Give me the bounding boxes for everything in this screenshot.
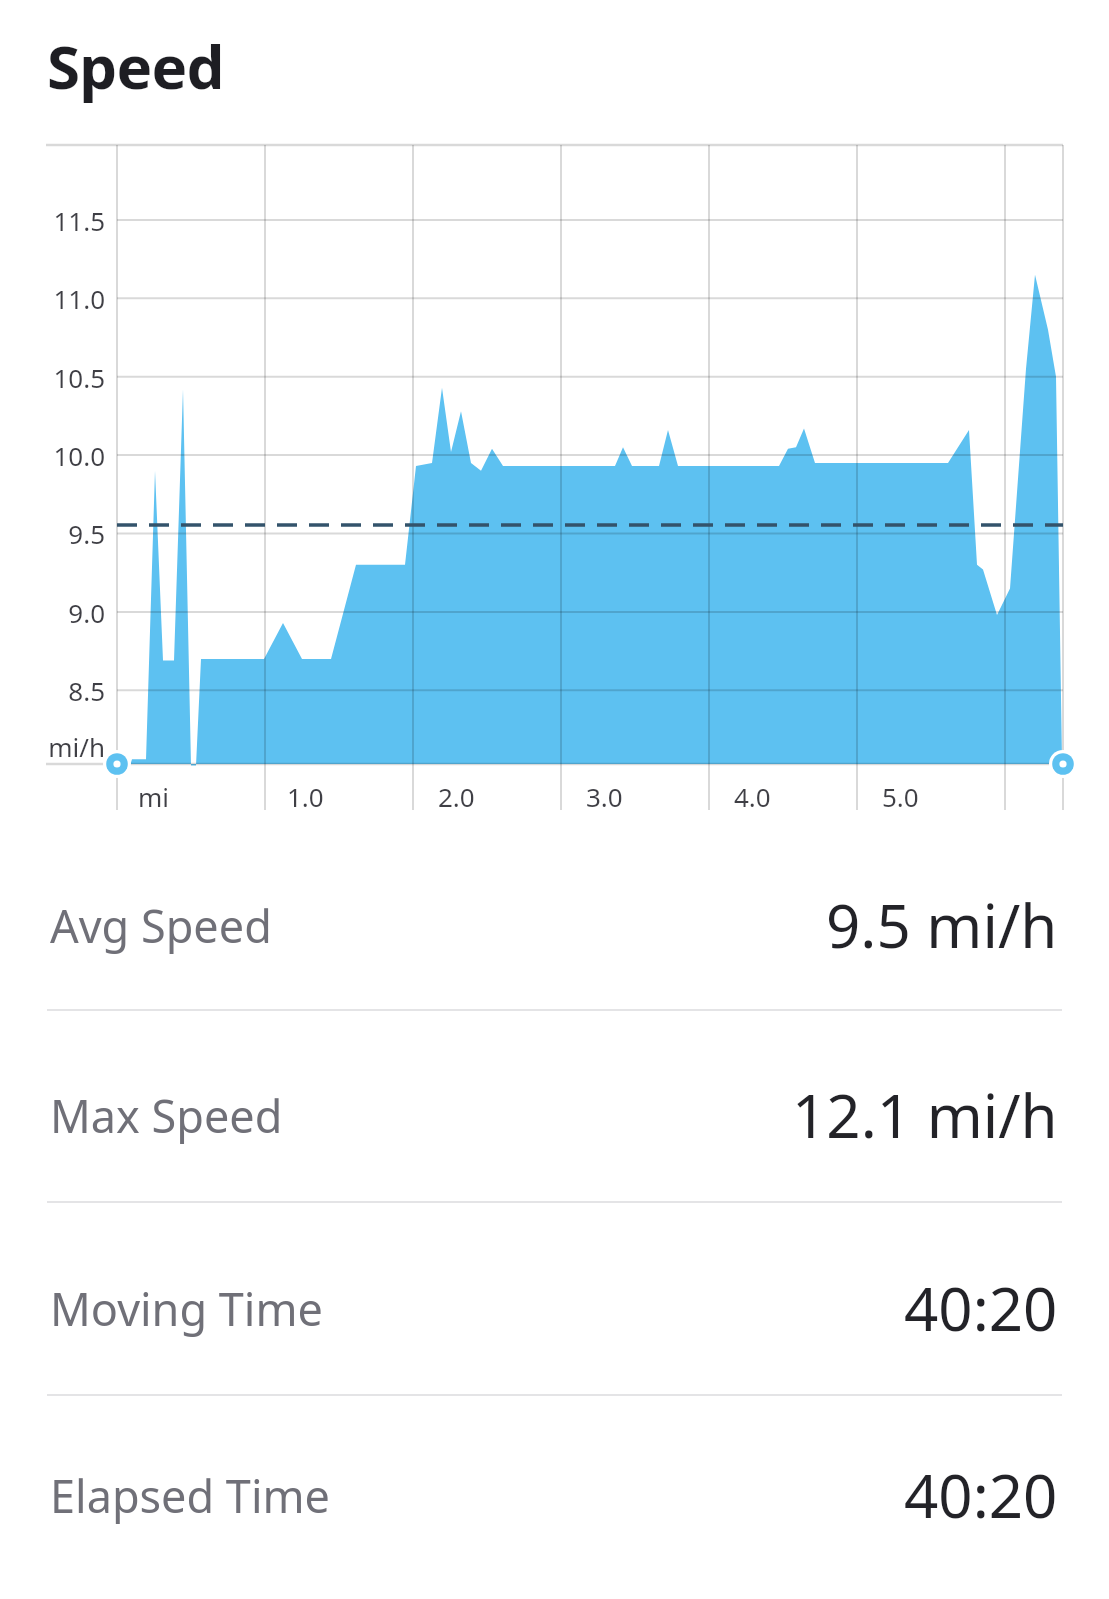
staticText: Elapsed Time <box>50 1465 330 1526</box>
staticText: Avg Speed <box>50 895 272 956</box>
staticText: Max Speed <box>50 1085 283 1146</box>
staticText: 40:20 <box>904 1454 1058 1536</box>
staticText: 4.0 <box>734 779 771 814</box>
button[interactable]: Avg Speed <box>0 830 1109 1020</box>
staticText: Moving Time <box>50 1278 323 1339</box>
staticText: 12.1 mi/h <box>792 1074 1058 1156</box>
staticText: 11.0 <box>53 281 105 316</box>
staticText: 9.5 mi/h <box>826 884 1058 966</box>
button[interactable]: Elapsed Time <box>0 1400 1109 1590</box>
staticText: 40:20 <box>904 1267 1058 1349</box>
staticText: Speed <box>47 25 224 107</box>
staticText: mi/h <box>48 729 105 764</box>
staticText: 10.5 <box>53 360 105 395</box>
staticText: 5.0 <box>882 779 919 814</box>
staticText: mi <box>138 779 170 814</box>
staticText: 3.0 <box>586 779 623 814</box>
button[interactable]: Moving Time <box>0 1213 1109 1403</box>
staticText: 10.0 <box>53 438 105 473</box>
staticText: 9.5 <box>68 516 105 551</box>
staticText: 8.5 <box>68 673 105 708</box>
staticText: 9.0 <box>68 595 105 630</box>
button[interactable]: Max Speed <box>0 1020 1109 1210</box>
staticText: 11.5 <box>53 203 105 238</box>
staticText: 1.0 <box>287 779 324 814</box>
staticText: 2.0 <box>438 779 475 814</box>
